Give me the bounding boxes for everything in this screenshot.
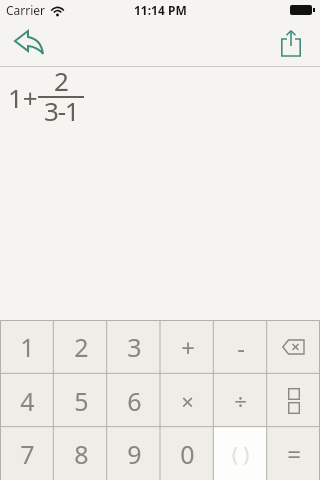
button[interactable]: =	[267, 427, 320, 480]
button[interactable]: ×	[161, 374, 214, 427]
staticText: 3	[127, 330, 142, 364]
staticText: 7	[20, 437, 35, 471]
staticText: 2	[54, 63, 69, 98]
staticText: -	[237, 331, 245, 364]
staticText: 6	[127, 384, 142, 418]
button[interactable]: 7	[0, 427, 54, 480]
button[interactable]	[10, 26, 50, 60]
button[interactable]: 2	[54, 320, 108, 374]
button[interactable]: ÷	[214, 374, 267, 427]
staticText: 0	[180, 437, 195, 471]
button[interactable]: ( )	[214, 427, 267, 480]
button[interactable]: -	[214, 320, 267, 374]
staticText: 1+	[8, 80, 38, 115]
button[interactable]: 1	[0, 320, 54, 374]
button[interactable]: 0	[161, 427, 214, 480]
staticText: 11:14 PM	[134, 2, 187, 18]
staticText: 4	[20, 384, 35, 418]
button[interactable]: 9	[108, 427, 161, 480]
staticText: 8	[74, 437, 89, 471]
staticText: =	[287, 437, 301, 470]
staticText: 3-1	[44, 93, 79, 128]
staticText: ( )	[232, 440, 250, 467]
button[interactable]: 4	[0, 374, 54, 427]
staticText: ×	[181, 386, 194, 416]
button[interactable]: 3	[108, 320, 161, 374]
staticText: 2	[74, 330, 89, 364]
button[interactable]: 5	[54, 374, 108, 427]
staticText: 1	[20, 330, 35, 364]
button[interactable]: +	[161, 320, 214, 374]
staticText: Carrier	[6, 2, 46, 18]
button[interactable]	[274, 25, 308, 61]
staticText: 5	[74, 384, 89, 418]
staticText: +	[181, 331, 195, 364]
button[interactable]: 8	[54, 427, 108, 480]
button[interactable]: 6	[108, 374, 161, 427]
staticText: ÷	[234, 386, 247, 416]
button[interactable]	[267, 320, 320, 374]
button[interactable]	[267, 374, 320, 427]
staticText: 9	[127, 437, 142, 471]
